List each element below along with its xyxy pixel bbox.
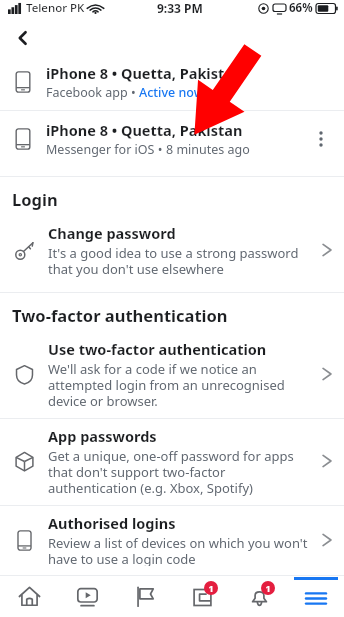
staticText: It's a good idea to use a strong passwor… [48,244,312,277]
button[interactable]: Back [6,22,40,54]
staticText: 66% [289,0,313,16]
staticText: Active now [139,84,204,101]
button[interactable]: Use two-factor authentication [0,332,344,418]
staticText: Review a list of devices on which you wo… [48,534,312,566]
button[interactable]: Groups [116,576,173,617]
button[interactable]: Menu [287,576,344,617]
staticText: Authorised logins [48,513,176,533]
staticText: Login [12,188,58,210]
button[interactable]: Notifications [230,576,287,617]
staticText: 9:33 PM [157,0,203,16]
button[interactable]: Change password [0,216,344,286]
button[interactable]: Authorised logins [0,506,344,575]
staticText: We'll ask for a code if we notice an att… [48,360,312,409]
button[interactable]: Home [0,576,58,617]
staticText: Use two-factor authentication [48,339,267,359]
button[interactable]: iPhone 8 • Quetta, Pakistan [0,111,344,167]
staticText: iPhone 8 • Quetta, Pakistan [46,120,243,140]
staticText: Messenger for iOS • [46,141,166,158]
button[interactable]: Marketplace [173,576,230,617]
button[interactable]: Watch [58,576,116,617]
staticText: Facebook app • [46,84,139,101]
staticText: App passwords [48,426,157,446]
staticText: 1 [265,582,271,594]
staticText: Get a unique, one-off password for apps … [48,447,312,496]
staticText: 1 [208,582,214,594]
staticText: 8 minutes ago [166,141,250,158]
staticText: Telenor PK [26,0,85,16]
button[interactable]: More options [306,124,336,154]
staticText: iPhone 8 • Quetta, Pakistan [46,63,243,83]
button[interactable]: App passwords [0,419,344,505]
staticText: Change password [48,223,176,243]
staticText: Two-factor authentication [12,304,228,326]
button[interactable]: iPhone 8 • Quetta, Pakistan [0,54,344,110]
